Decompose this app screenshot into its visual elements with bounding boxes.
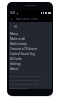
staticText: About <box>10 67 19 71</box>
staticText: Application name <box>16 17 39 21</box>
button[interactable]: Control Smart Tag <box>9 51 52 56</box>
button[interactable]: Model setup <box>9 41 52 46</box>
staticText: Connect a TV device <box>10 47 38 51</box>
button[interactable]: About <box>9 66 52 71</box>
button[interactable]: Settings <box>9 61 52 66</box>
staticText: the user manual or visit <box>10 78 38 81</box>
staticText: Control Smart Tag <box>10 52 35 56</box>
staticText: 9:41 <box>10 11 16 15</box>
staticText: Model setup <box>10 42 27 46</box>
button[interactable]: AI Guide <box>9 56 52 61</box>
staticText: For more information, see <box>10 74 41 77</box>
staticText: latest updates <box>10 86 27 89</box>
staticText: Make a call <box>10 37 26 41</box>
button[interactable]: Connect a TV device <box>9 46 52 51</box>
button[interactable]: Back <box>10 18 13 21</box>
button[interactable]: Menu <box>9 31 52 36</box>
staticText: Menu <box>10 32 18 36</box>
button[interactable]: Make a call <box>9 36 52 41</box>
staticText: Settings <box>10 62 21 66</box>
button[interactable]: Share <box>14 25 17 28</box>
staticText: the official website for the <box>10 82 41 85</box>
staticText: AI Guide <box>10 57 22 61</box>
